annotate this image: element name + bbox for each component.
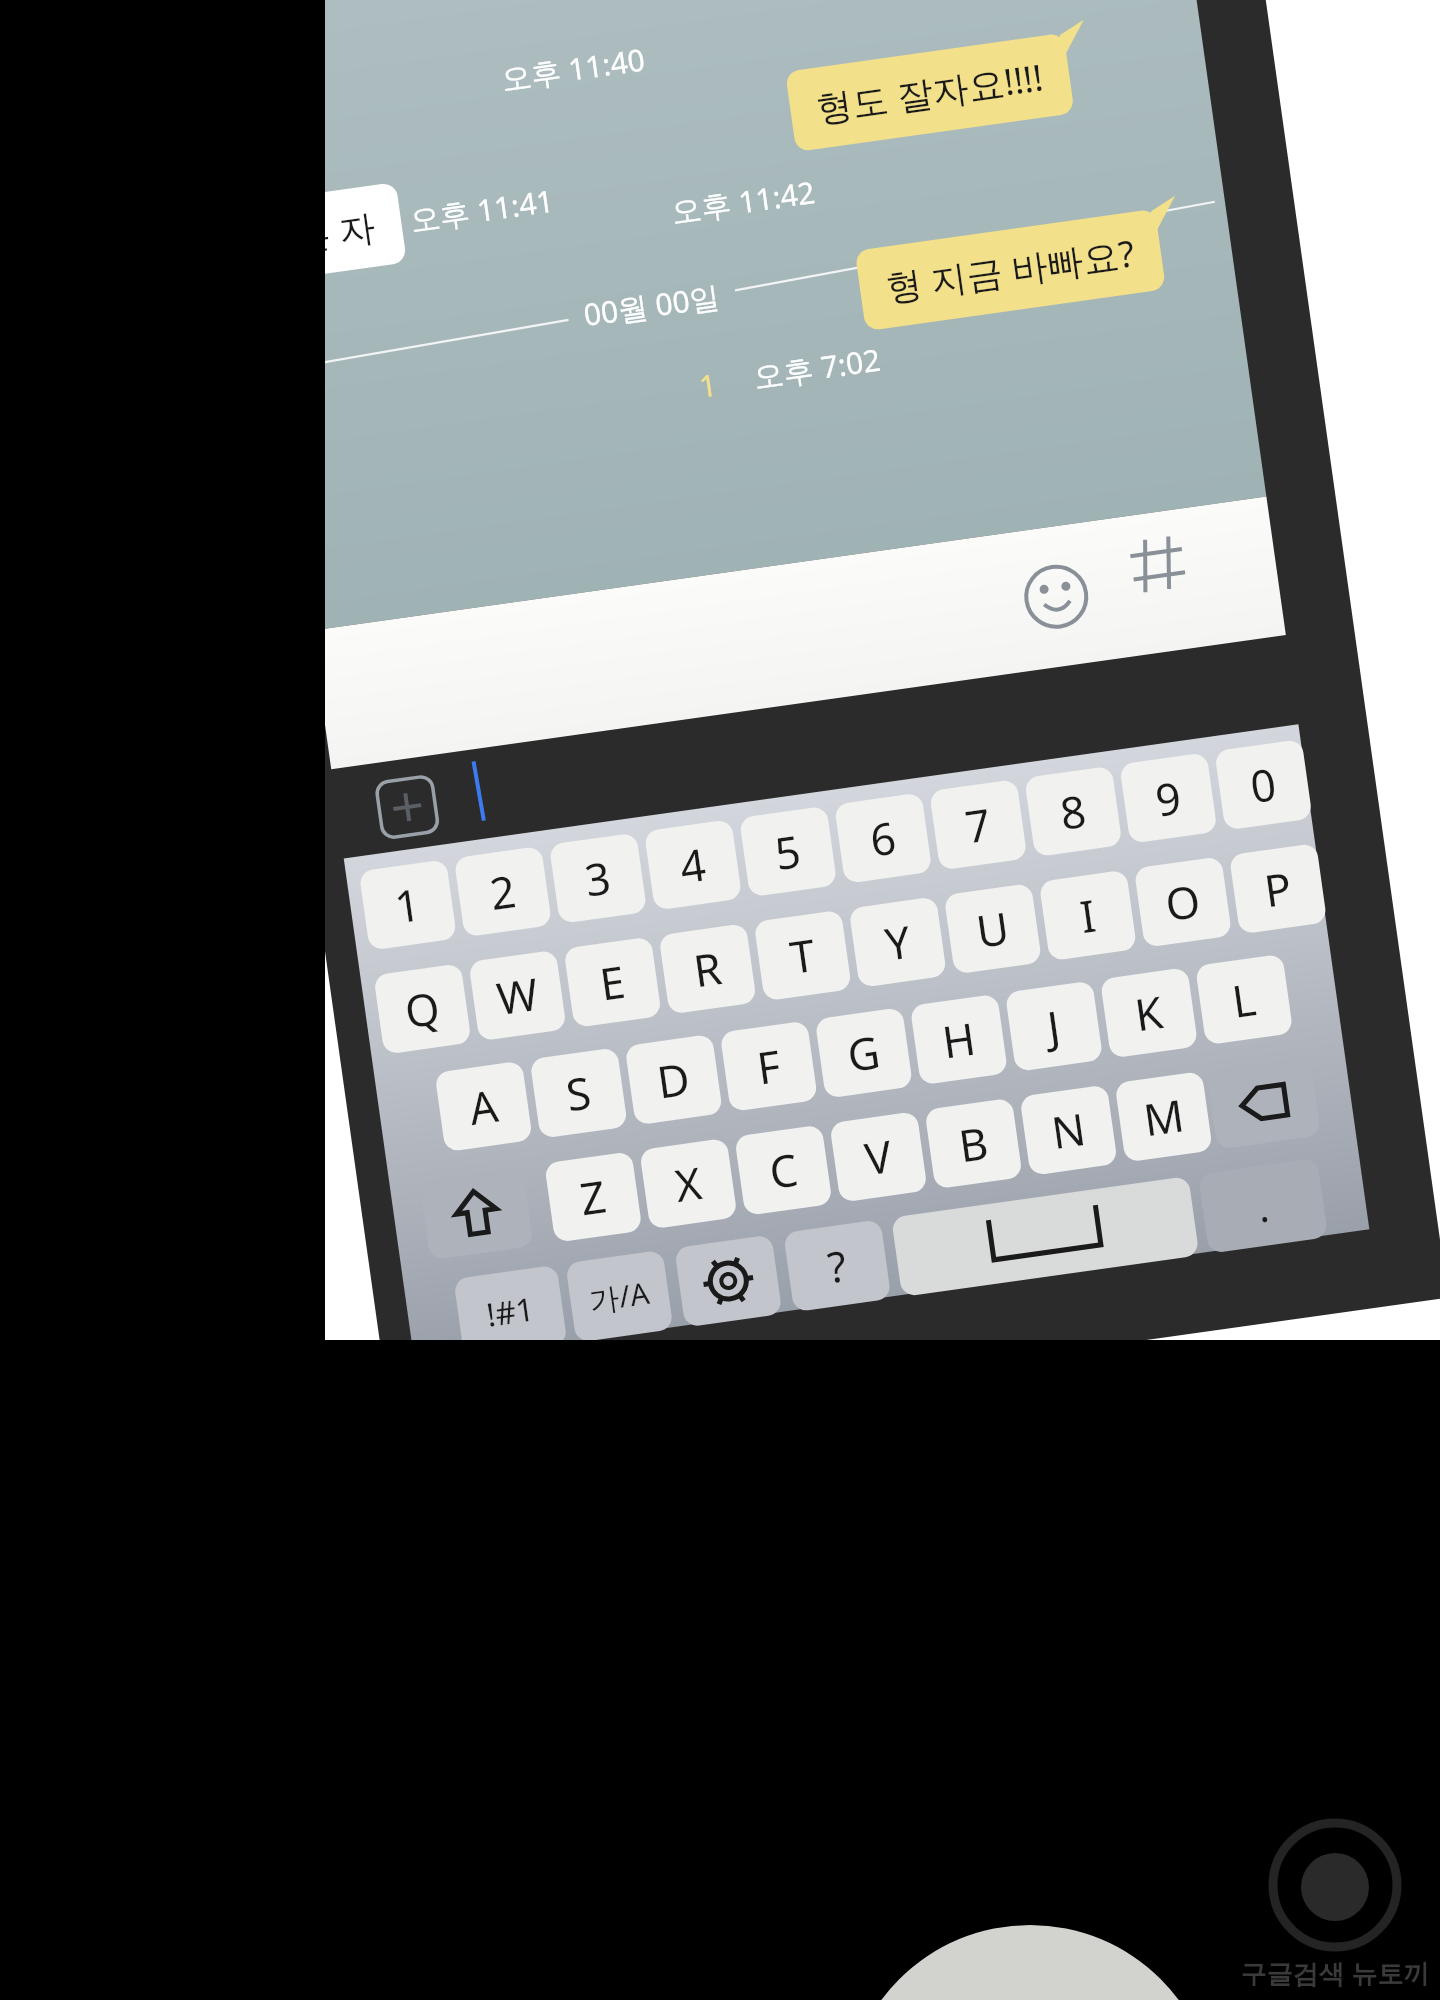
button[interactable]: Webtoon panel: phone messenger with keyb…: [0, 0, 1440, 2000]
